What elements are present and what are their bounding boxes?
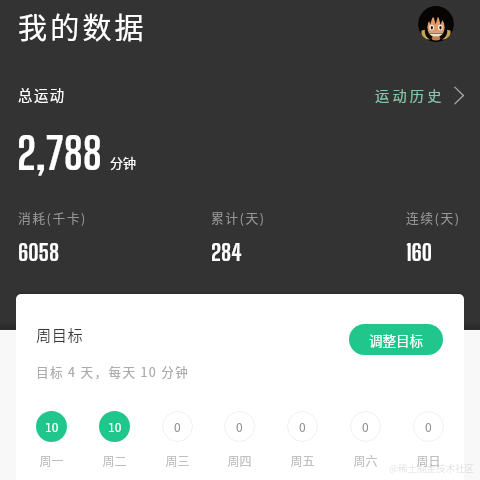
staticText: 周六 (353, 452, 378, 469)
staticText: 周五 (290, 452, 315, 469)
staticText: 消耗(千卡) (18, 208, 87, 227)
staticText: 0 (425, 418, 432, 435)
button[interactable]: 调整目标 (349, 324, 443, 355)
staticText: 周目标 (36, 323, 84, 345)
button[interactable]: 0 (155, 407, 199, 469)
staticText: 10 (108, 418, 122, 435)
staticText: 10 (45, 418, 59, 435)
staticText: 目标 4 天，每天 10 分钟 (36, 362, 190, 380)
staticText: 总运动 (18, 84, 66, 105)
staticText: 调整目标 (369, 330, 423, 350)
staticText: 周一 (39, 452, 64, 469)
staticText: 周二 (102, 452, 127, 469)
button[interactable]: 10 (92, 407, 136, 469)
staticText: 分钟 (110, 153, 137, 172)
staticText: 连续(天) (406, 208, 461, 227)
staticText: 累计(天) (211, 208, 266, 227)
staticText: 我的数据 (18, 5, 147, 47)
staticText: 160 (406, 238, 433, 266)
staticText: 284 (211, 238, 242, 266)
staticText: 0 (362, 418, 369, 435)
staticText: @稀土掘金技术社区 (389, 461, 474, 475)
staticText: 2,788 (17, 127, 102, 180)
button[interactable]: 0 (343, 407, 387, 469)
staticText: 0 (299, 418, 306, 435)
button[interactable]: 10 (29, 407, 73, 469)
staticText: 周日 (416, 452, 441, 469)
button[interactable]: 0 (280, 407, 324, 469)
staticText: 运动历史 (375, 85, 445, 106)
staticText: 周四 (227, 452, 252, 469)
button[interactable]: 运动历史 (375, 85, 464, 106)
staticText: 6058 (18, 238, 60, 266)
staticText: 0 (236, 418, 243, 435)
button[interactable]: 0 (406, 407, 450, 469)
staticText: 0 (174, 418, 181, 435)
staticText: 周三 (165, 452, 190, 469)
button[interactable]: 0 (217, 407, 261, 469)
button[interactable]: Profile avatar (418, 6, 454, 42)
